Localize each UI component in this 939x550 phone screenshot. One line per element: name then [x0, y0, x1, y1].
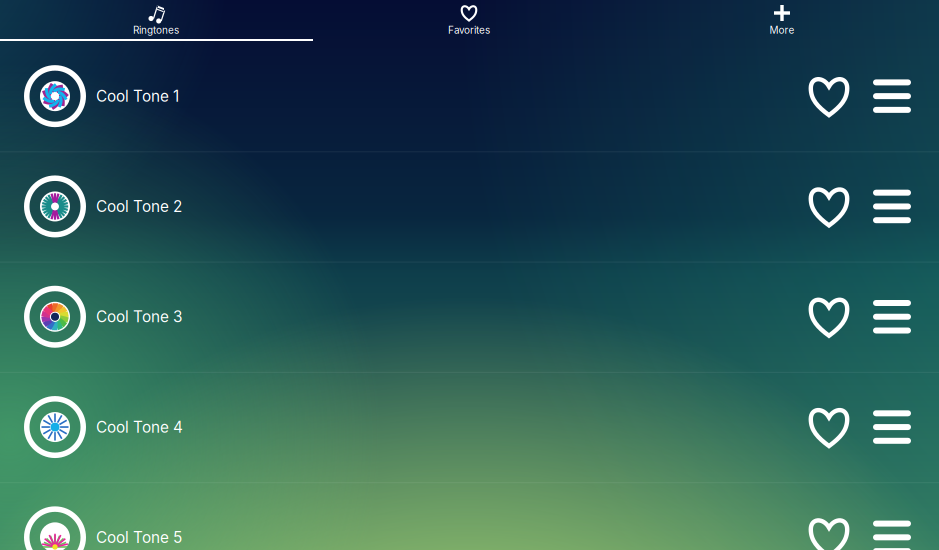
- staticText: Cool Tone 3: [96, 307, 182, 326]
- button[interactable]: Favorite Cool Tone 4: [800, 372, 858, 482]
- staticText: Cool Tone 5: [96, 528, 182, 547]
- staticText: Cool Tone 1: [96, 87, 179, 105]
- button[interactable]: Play Cool Tone 3: [7, 262, 103, 372]
- button[interactable]: Favorites: [312, 0, 625, 41]
- button[interactable]: Play Cool Tone 2: [7, 151, 103, 262]
- button[interactable]: Play Cool Tone 4: [7, 372, 103, 482]
- button[interactable]: More: [625, 0, 938, 41]
- button[interactable]: More options for Cool Tone 4: [863, 372, 921, 482]
- button[interactable]: More options for Cool Tone 2: [863, 151, 921, 262]
- button[interactable]: More options for Cool Tone 5: [863, 482, 921, 550]
- staticText: More: [769, 24, 794, 36]
- button[interactable]: More options for Cool Tone 3: [863, 262, 921, 372]
- button[interactable]: Favorite Cool Tone 2: [800, 151, 858, 262]
- staticText: Ringtones: [133, 24, 179, 36]
- button[interactable]: Play Cool Tone 5: [7, 482, 103, 550]
- button[interactable]: Play Cool Tone 1: [7, 41, 103, 151]
- button[interactable]: Favorite Cool Tone 1: [800, 41, 858, 151]
- staticText: Favorites: [448, 24, 490, 36]
- button[interactable]: Favorite Cool Tone 3: [800, 262, 858, 372]
- button[interactable]: More options for Cool Tone 1: [863, 41, 921, 151]
- staticText: Cool Tone 2: [96, 197, 182, 216]
- staticText: Cool Tone 4: [96, 418, 183, 436]
- button[interactable]: Favorite Cool Tone 5: [800, 482, 858, 550]
- button[interactable]: Ringtones: [0, 0, 312, 41]
